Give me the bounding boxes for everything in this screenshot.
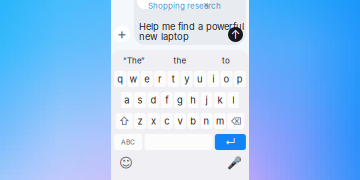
button[interactable]: f <box>161 92 173 108</box>
staticText: i <box>212 73 214 85</box>
staticText: j <box>206 94 208 106</box>
staticText: “The” <box>123 56 145 65</box>
button[interactable]: m <box>214 113 226 129</box>
button[interactable]: v <box>174 113 186 129</box>
button[interactable]: Send <box>228 27 243 42</box>
button[interactable]: e <box>141 71 153 87</box>
staticText: new laptop <box>139 31 189 42</box>
staticText: y <box>184 73 189 85</box>
button[interactable]: “The” <box>111 50 157 71</box>
button[interactable]: the <box>157 50 203 71</box>
staticText: k <box>217 94 222 106</box>
button[interactable]: y <box>181 71 193 87</box>
staticText: x <box>151 115 156 127</box>
button[interactable]: Return <box>215 134 246 150</box>
staticText: a <box>124 94 129 106</box>
staticText: ✕ <box>203 1 209 9</box>
button[interactable]: h <box>187 92 199 108</box>
staticText: u <box>197 73 203 85</box>
staticText: z <box>138 115 143 127</box>
staticText: e <box>144 73 149 85</box>
staticText: b <box>190 115 196 127</box>
staticText: p <box>237 73 243 85</box>
button[interactable]: t <box>167 71 179 87</box>
button[interactable]: r <box>154 71 166 87</box>
staticText: ⌫ <box>230 115 241 127</box>
button[interactable]: o <box>220 71 233 87</box>
button[interactable]: Emoji <box>111 150 141 176</box>
staticText: ABC <box>121 138 135 146</box>
button[interactable]: x <box>147 113 159 129</box>
staticText: o <box>224 73 230 85</box>
button[interactable]: u <box>194 71 206 87</box>
staticText: n <box>204 115 210 127</box>
staticText: + <box>117 25 127 43</box>
staticText: the <box>173 56 186 65</box>
button[interactable]: b <box>187 113 199 129</box>
staticText: to <box>222 56 230 65</box>
staticText: f <box>165 94 168 106</box>
button[interactable]: j <box>201 92 213 108</box>
staticText: w <box>129 73 137 85</box>
button[interactable]: s <box>134 92 146 108</box>
button[interactable]: Add attachment <box>114 26 130 42</box>
staticText: ⇧ <box>119 114 130 127</box>
staticText: s <box>138 94 143 106</box>
button[interactable]: d <box>147 92 159 108</box>
staticText: r <box>158 73 162 85</box>
staticText: ☺ <box>119 155 133 171</box>
staticText: q <box>117 73 123 85</box>
staticText: g <box>177 94 183 106</box>
staticText: ↵ <box>225 135 236 148</box>
button[interactable]: g <box>174 92 186 108</box>
staticText: 🎤 <box>226 156 241 170</box>
staticText: t <box>172 73 175 85</box>
staticText: m <box>216 115 224 127</box>
staticText: v <box>177 115 182 127</box>
staticText: l <box>232 94 234 106</box>
button[interactable]: i <box>207 71 219 87</box>
button[interactable]: n <box>201 113 213 129</box>
button[interactable]: w <box>127 71 139 87</box>
staticText: ↑ <box>230 27 240 42</box>
staticText: d <box>150 94 156 106</box>
button[interactable]: Shift <box>116 113 133 129</box>
button[interactable]: l <box>227 92 239 108</box>
button[interactable]: z <box>134 113 146 129</box>
staticText: Shopping research <box>148 1 221 11</box>
button[interactable]: q <box>114 71 126 87</box>
button[interactable]: ABC <box>114 134 142 150</box>
staticText: c <box>164 115 169 127</box>
button[interactable]: a <box>121 92 133 108</box>
button[interactable]: c <box>161 113 173 129</box>
staticText: Help me find a powerful <box>139 21 244 32</box>
button[interactable]: Delete <box>227 113 244 129</box>
button[interactable]: k <box>214 92 226 108</box>
staticText: h <box>190 94 196 106</box>
button[interactable]: to <box>203 50 249 71</box>
button[interactable]: Dictate <box>219 150 249 176</box>
button[interactable]: p <box>234 71 246 87</box>
